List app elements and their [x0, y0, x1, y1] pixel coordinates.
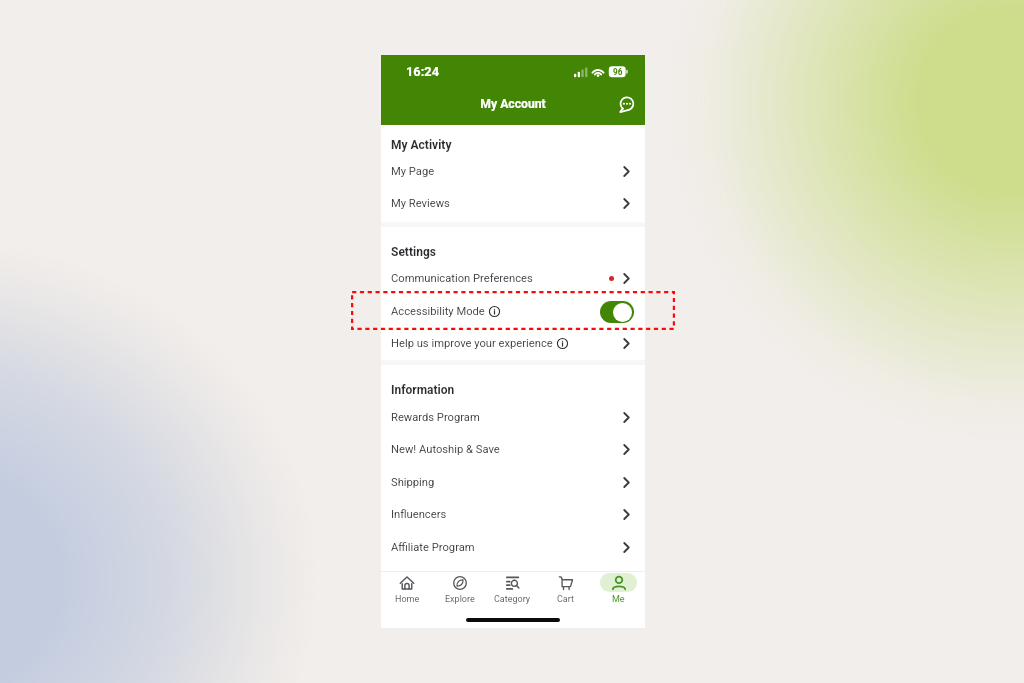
button[interactable]: Cart	[539, 573, 592, 604]
staticText: My Account	[381, 97, 645, 111]
staticText: My Page	[391, 165, 435, 178]
staticText: Shipping	[391, 476, 435, 489]
staticText: My Activity	[391, 138, 452, 152]
staticText: 96	[613, 67, 623, 77]
button[interactable]: Accessibility Mode	[381, 295, 645, 328]
staticText: Me	[612, 594, 625, 604]
button[interactable]: Explore	[433, 573, 486, 604]
staticText: Influencers	[391, 508, 447, 521]
staticText: Settings	[391, 245, 436, 259]
staticText: Explore	[445, 594, 475, 604]
button[interactable]: Me	[592, 573, 645, 604]
button[interactable]: Home	[381, 573, 433, 604]
staticText: Communication Preferences	[391, 272, 533, 285]
button[interactable]: Chat support	[612, 91, 640, 119]
staticText: Accessibility Mode	[391, 305, 485, 318]
button[interactable]: My Page	[381, 155, 645, 188]
staticText: Help us improve your experience	[391, 337, 553, 350]
button[interactable]: Accessibility Mode toggle, on	[600, 301, 634, 323]
staticText: Home	[395, 594, 420, 604]
staticText: My Reviews	[391, 197, 450, 210]
staticText: Affiliate Program	[391, 541, 475, 554]
button[interactable]: Help us improve your experience	[381, 327, 645, 360]
button[interactable]: New! Autoship & Save	[381, 433, 645, 466]
button[interactable]: Shipping	[381, 466, 645, 499]
button[interactable]: Category	[486, 573, 539, 604]
button[interactable]: Influencers	[381, 498, 645, 531]
staticText: Category	[494, 594, 531, 604]
staticText: Cart	[557, 594, 574, 604]
staticText: Rewards Program	[391, 411, 480, 424]
staticText: New! Autoship & Save	[391, 443, 500, 456]
button[interactable]: Rewards Program	[381, 401, 645, 434]
button[interactable]: Communication Preferences	[381, 262, 645, 295]
button[interactable]: My Reviews	[381, 187, 645, 220]
staticText: 16:24	[406, 64, 439, 79]
button[interactable]: Affiliate Program	[381, 531, 645, 564]
staticText: Information	[391, 383, 455, 397]
